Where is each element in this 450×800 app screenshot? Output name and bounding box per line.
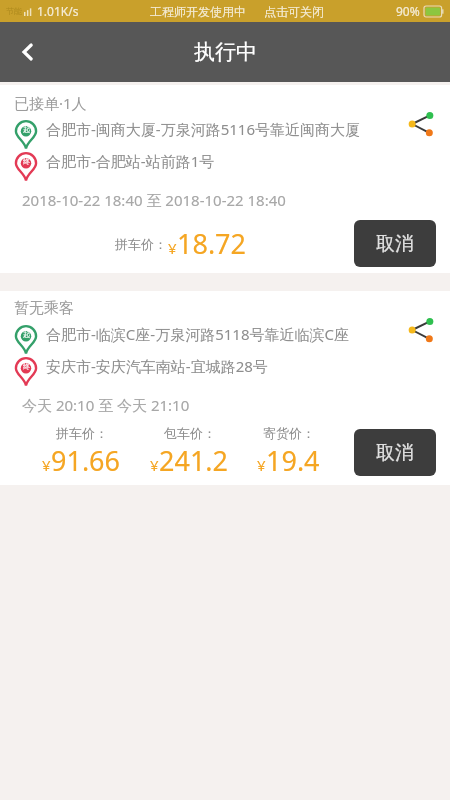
staticText: 终	[23, 157, 30, 166]
button[interactable]: Share	[404, 107, 438, 141]
staticText: ¥	[168, 238, 177, 258]
staticText: 点击可关闭	[264, 4, 324, 19]
staticText: 合肥市-临滨C座-万泉河路5118号靠近临滨C座	[46, 324, 349, 344]
button[interactable]: 取消	[354, 220, 436, 267]
staticText: 合肥市-合肥站-站前路1号	[46, 151, 215, 171]
staticText: 起	[23, 330, 30, 339]
staticText: 终	[23, 362, 30, 371]
staticText: 90%	[396, 3, 420, 19]
staticText: 合肥市-闽商大厦-万泉河路5116号靠近闽商大厦	[46, 119, 360, 139]
staticText: 18.72	[177, 225, 247, 262]
staticText: 取消	[376, 232, 414, 256]
staticText: 已接单·1人	[14, 93, 87, 113]
staticText: 节能	[6, 6, 22, 16]
staticText: ¥	[150, 455, 159, 475]
button[interactable]: Back	[0, 24, 56, 80]
staticText: 寄货价：	[263, 425, 315, 441]
staticText: 拼车价：	[56, 425, 108, 441]
staticText: 起	[23, 125, 30, 134]
staticText: 241.2	[159, 442, 229, 479]
button[interactable]: Share	[404, 313, 438, 347]
staticText: 1.01K/s	[37, 3, 79, 19]
staticText: 今天 20:10 至 今天 21:10	[22, 395, 190, 415]
staticText: 91.66	[51, 442, 121, 479]
staticText: 2018-10-22 18:40 至 2018-10-22 18:40	[22, 190, 286, 210]
staticText: 拼车价：	[115, 236, 167, 252]
staticText: 执行中	[194, 39, 257, 65]
staticText: 安庆市-安庆汽车南站-宜城路28号	[46, 356, 268, 376]
staticText: 取消	[376, 441, 414, 465]
staticText: 包车价：	[164, 425, 216, 441]
staticText: 暂无乘客	[14, 299, 74, 318]
button[interactable]: 取消	[354, 429, 436, 476]
staticText: 19.4	[266, 442, 320, 479]
staticText: 工程师开发使用中	[150, 4, 246, 19]
staticText: ¥	[257, 455, 266, 475]
staticText: ¥	[42, 455, 51, 475]
